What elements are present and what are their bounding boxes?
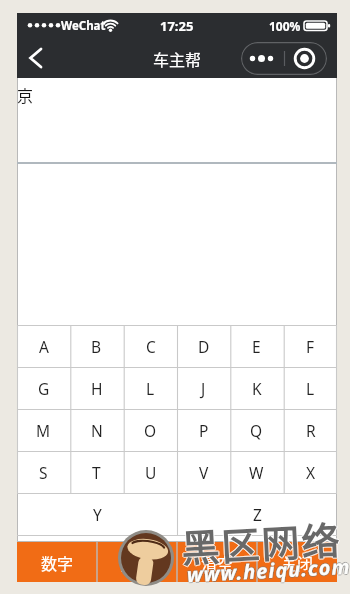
staticText: B xyxy=(91,336,102,357)
staticText: L xyxy=(306,378,315,399)
staticText: A xyxy=(39,336,49,357)
button[interactable]: B xyxy=(70,325,123,367)
staticText: C xyxy=(146,336,156,357)
button[interactable]: G xyxy=(17,367,70,409)
staticText: E xyxy=(252,336,261,357)
staticText: www.heiqu.com xyxy=(187,553,350,588)
staticText: W xyxy=(249,462,264,483)
staticText: 黑区网络 xyxy=(180,509,344,572)
staticText: R xyxy=(306,420,316,441)
button[interactable]: Q xyxy=(230,409,283,451)
button[interactable] xyxy=(241,42,327,75)
staticText: 删除 xyxy=(121,551,154,574)
staticText: N xyxy=(91,420,103,441)
button[interactable]: 清空 xyxy=(177,542,257,582)
staticText: S xyxy=(39,462,48,483)
staticText: 关闭 xyxy=(281,551,314,574)
staticText: Q xyxy=(250,420,263,441)
button[interactable]: X xyxy=(284,451,337,493)
staticText: M xyxy=(36,420,51,441)
staticText: J xyxy=(201,378,206,399)
staticText: Y xyxy=(93,504,102,525)
staticText: www.heiqu.com xyxy=(185,553,350,588)
button[interactable]: R xyxy=(284,409,337,451)
button[interactable]: A xyxy=(17,325,70,367)
button[interactable]: Z xyxy=(177,493,337,535)
staticText: X xyxy=(306,462,316,483)
staticText: 黑区网络 xyxy=(180,510,344,573)
staticText: 数字 xyxy=(41,551,74,574)
button[interactable]: V xyxy=(177,451,230,493)
staticText: H xyxy=(91,378,103,399)
button[interactable]: W xyxy=(230,451,283,493)
staticText: 17:25 xyxy=(160,17,194,35)
staticText: 黑区网络 xyxy=(180,511,344,574)
staticText: www.heiqu.com xyxy=(186,553,350,588)
button[interactable]: N xyxy=(70,409,123,451)
button[interactable]: Y xyxy=(17,493,177,535)
button[interactable] xyxy=(21,43,49,73)
staticText: L xyxy=(146,378,155,399)
staticText: WeChat xyxy=(61,18,106,34)
button[interactable]: J xyxy=(177,367,230,409)
staticText: 京 xyxy=(17,83,34,106)
button[interactable]: 数字 xyxy=(17,542,97,582)
staticText: www.heiqu.com xyxy=(186,554,350,589)
button[interactable]: C xyxy=(124,325,177,367)
button[interactable]: 京 xyxy=(17,78,337,163)
button[interactable]: E xyxy=(230,325,283,367)
button[interactable]: M xyxy=(17,409,70,451)
button[interactable]: O xyxy=(124,409,177,451)
staticText: 车主帮 xyxy=(153,47,202,70)
staticText: V xyxy=(199,462,209,483)
staticText: F xyxy=(306,336,315,357)
staticText: 黑区网络 xyxy=(181,510,345,573)
button[interactable]: P xyxy=(177,409,230,451)
staticText: G xyxy=(38,378,50,399)
button[interactable]: T xyxy=(70,451,123,493)
staticText: 黑区网络 xyxy=(179,510,343,574)
staticText: U xyxy=(145,462,157,483)
staticText: K xyxy=(252,378,262,399)
button[interactable]: 删除 xyxy=(97,542,177,582)
button[interactable]: L xyxy=(284,367,337,409)
staticText: T xyxy=(92,462,101,483)
button[interactable]: F xyxy=(284,325,337,367)
button[interactable]: K xyxy=(230,367,283,409)
button[interactable]: H xyxy=(70,367,123,409)
staticText: Z xyxy=(253,504,262,525)
staticText: D xyxy=(198,336,210,357)
button[interactable]: L xyxy=(124,367,177,409)
button[interactable]: 关闭 xyxy=(257,542,337,582)
button[interactable]: D xyxy=(177,325,230,367)
button[interactable]: S xyxy=(17,451,70,493)
staticText: www.heiqu.com xyxy=(186,552,350,587)
button[interactable]: U xyxy=(124,451,177,493)
staticText: P xyxy=(199,420,209,441)
staticText: 100% xyxy=(269,18,301,34)
staticText: O xyxy=(144,420,157,441)
staticText: 清空 xyxy=(201,551,234,574)
